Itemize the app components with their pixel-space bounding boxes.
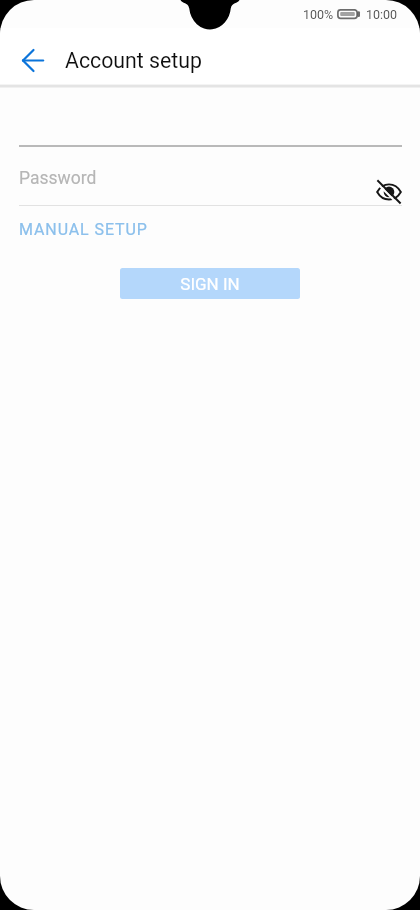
staticText: 100%	[303, 7, 334, 22]
staticText: MANUAL SETUP	[19, 220, 148, 239]
staticText: 10:00	[366, 7, 398, 22]
button[interactable]: MANUAL SETUP	[19, 215, 148, 243]
staticText: SIGN IN	[180, 274, 240, 294]
button[interactable]: Show password	[372, 174, 406, 208]
staticText: Account setup	[65, 48, 203, 73]
button[interactable]: SIGN IN	[120, 268, 300, 299]
staticText: Password	[19, 168, 97, 189]
button[interactable]: Back	[10, 38, 55, 83]
